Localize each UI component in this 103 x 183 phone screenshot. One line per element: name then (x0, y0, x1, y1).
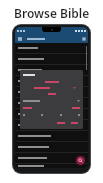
button[interactable] (55, 121, 67, 125)
button[interactable] (15, 131, 88, 141)
button[interactable] (15, 142, 88, 152)
button[interactable]: Search (76, 156, 85, 165)
button[interactable] (15, 98, 88, 108)
button[interactable] (15, 76, 88, 86)
button[interactable] (15, 120, 88, 130)
button[interactable]: Settings (80, 35, 87, 42)
button[interactable] (15, 65, 88, 75)
button[interactable] (15, 164, 88, 168)
button[interactable] (69, 121, 80, 125)
button[interactable] (23, 100, 80, 102)
staticText: Browse Bible (14, 5, 90, 21)
button[interactable] (15, 153, 88, 163)
button[interactable] (15, 54, 88, 64)
button[interactable] (15, 109, 88, 119)
button[interactable] (23, 87, 80, 89)
button[interactable] (15, 43, 88, 53)
button[interactable] (15, 87, 88, 97)
button[interactable]: Open navigation menu (16, 35, 23, 42)
